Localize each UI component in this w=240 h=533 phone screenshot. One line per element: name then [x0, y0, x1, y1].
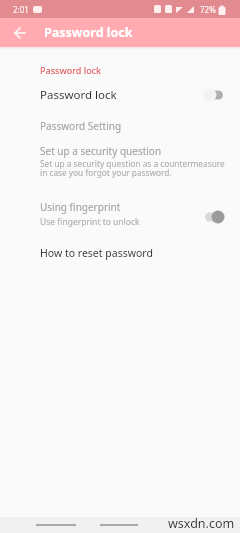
button[interactable]: Password Setting [0, 114, 240, 138]
staticText: Set up a security question as a counterm… [40, 158, 225, 179]
staticText: 2:01 [13, 4, 29, 15]
staticText: How to reset password [40, 246, 153, 260]
button[interactable]: Password lock [0, 76, 240, 114]
staticText: Password Setting [40, 119, 122, 133]
staticText: Use fingerprint to unlock [40, 216, 140, 228]
staticText: Set up a security question [40, 144, 162, 158]
staticText: Password lock [44, 24, 133, 41]
button[interactable]: Set up a security question [0, 138, 240, 179]
staticText: Password lock [40, 87, 117, 103]
staticText: wsxdn.com [168, 515, 235, 531]
staticText: Password lock [40, 64, 102, 76]
staticText: 72% [200, 4, 216, 15]
staticText: Using fingerprint [40, 200, 121, 214]
button[interactable]: How to reset password [0, 228, 240, 278]
button[interactable] [0, 18, 40, 47]
button[interactable]: Using fingerprint [0, 179, 240, 228]
